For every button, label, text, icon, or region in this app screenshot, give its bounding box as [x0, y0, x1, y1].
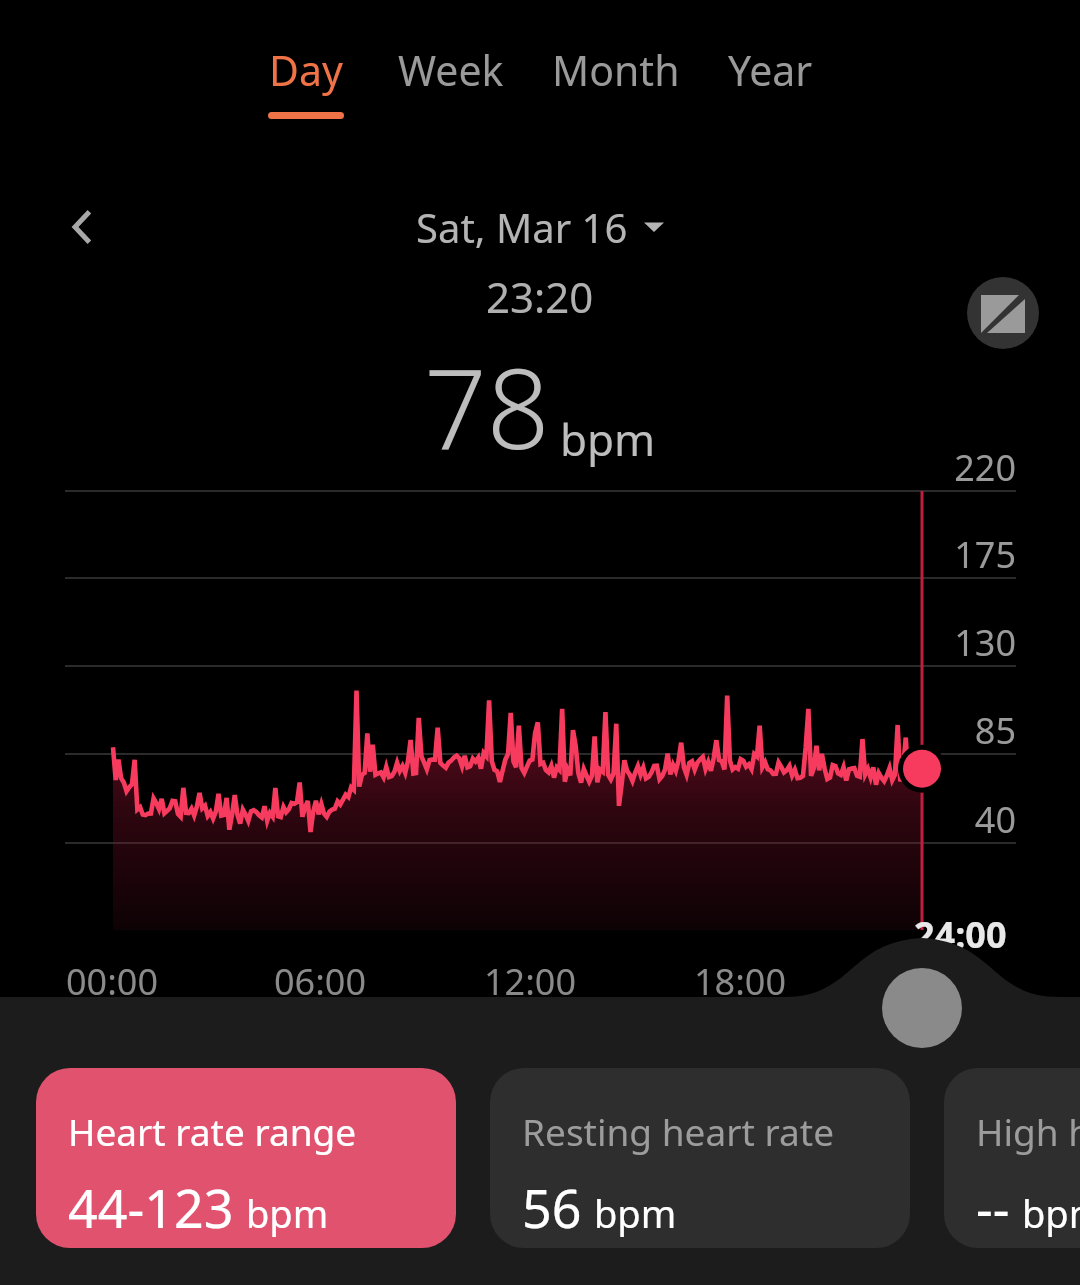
- button[interactable]: Year: [724, 40, 817, 100]
- button[interactable]: Heart rate range: [36, 1068, 456, 1248]
- staticText: 40: [896, 795, 1016, 844]
- staticText: 130: [896, 618, 1016, 667]
- staticText: bpm: [560, 409, 656, 469]
- button[interactable]: Month: [548, 40, 684, 100]
- button[interactable]: Resting heart rate: [490, 1068, 910, 1248]
- staticText: Resting heart rate: [522, 1106, 835, 1156]
- staticText: 24:00: [914, 910, 1007, 959]
- button[interactable]: Expand chart: [967, 277, 1039, 349]
- staticText: 44-123: [68, 1172, 234, 1243]
- staticText: bpm: [1022, 1187, 1080, 1239]
- staticText: 175: [896, 530, 1016, 579]
- staticText: Year: [728, 42, 813, 98]
- staticText: Month: [552, 42, 680, 98]
- staticText: Sat, Mar 16: [416, 200, 628, 254]
- button[interactable]: Sat, Mar 16: [406, 196, 674, 258]
- staticText: 00:00: [32, 957, 192, 1006]
- staticText: bpm: [594, 1187, 677, 1239]
- staticText: Day: [269, 42, 343, 98]
- button[interactable]: High he: [944, 1068, 1080, 1248]
- button[interactable]: Previous day: [50, 196, 116, 258]
- staticText: Week: [398, 42, 504, 98]
- staticText: 18:00: [660, 957, 820, 1006]
- button[interactable]: Week: [394, 40, 508, 100]
- staticText: --: [976, 1172, 1010, 1243]
- button[interactable]: Day: [264, 40, 348, 121]
- staticText: Heart rate range: [68, 1106, 357, 1156]
- staticText: 06:00: [240, 957, 400, 1006]
- staticText: 78: [424, 331, 550, 481]
- button[interactable]: Drag handle: [882, 968, 962, 1048]
- staticText: 220: [896, 443, 1016, 492]
- staticText: 56: [522, 1172, 582, 1243]
- staticText: 85: [896, 706, 1016, 755]
- staticText: 23:20: [486, 268, 594, 325]
- staticText: 12:00: [450, 957, 610, 1006]
- staticText: bpm: [246, 1187, 329, 1239]
- staticText: High he: [976, 1106, 1080, 1156]
